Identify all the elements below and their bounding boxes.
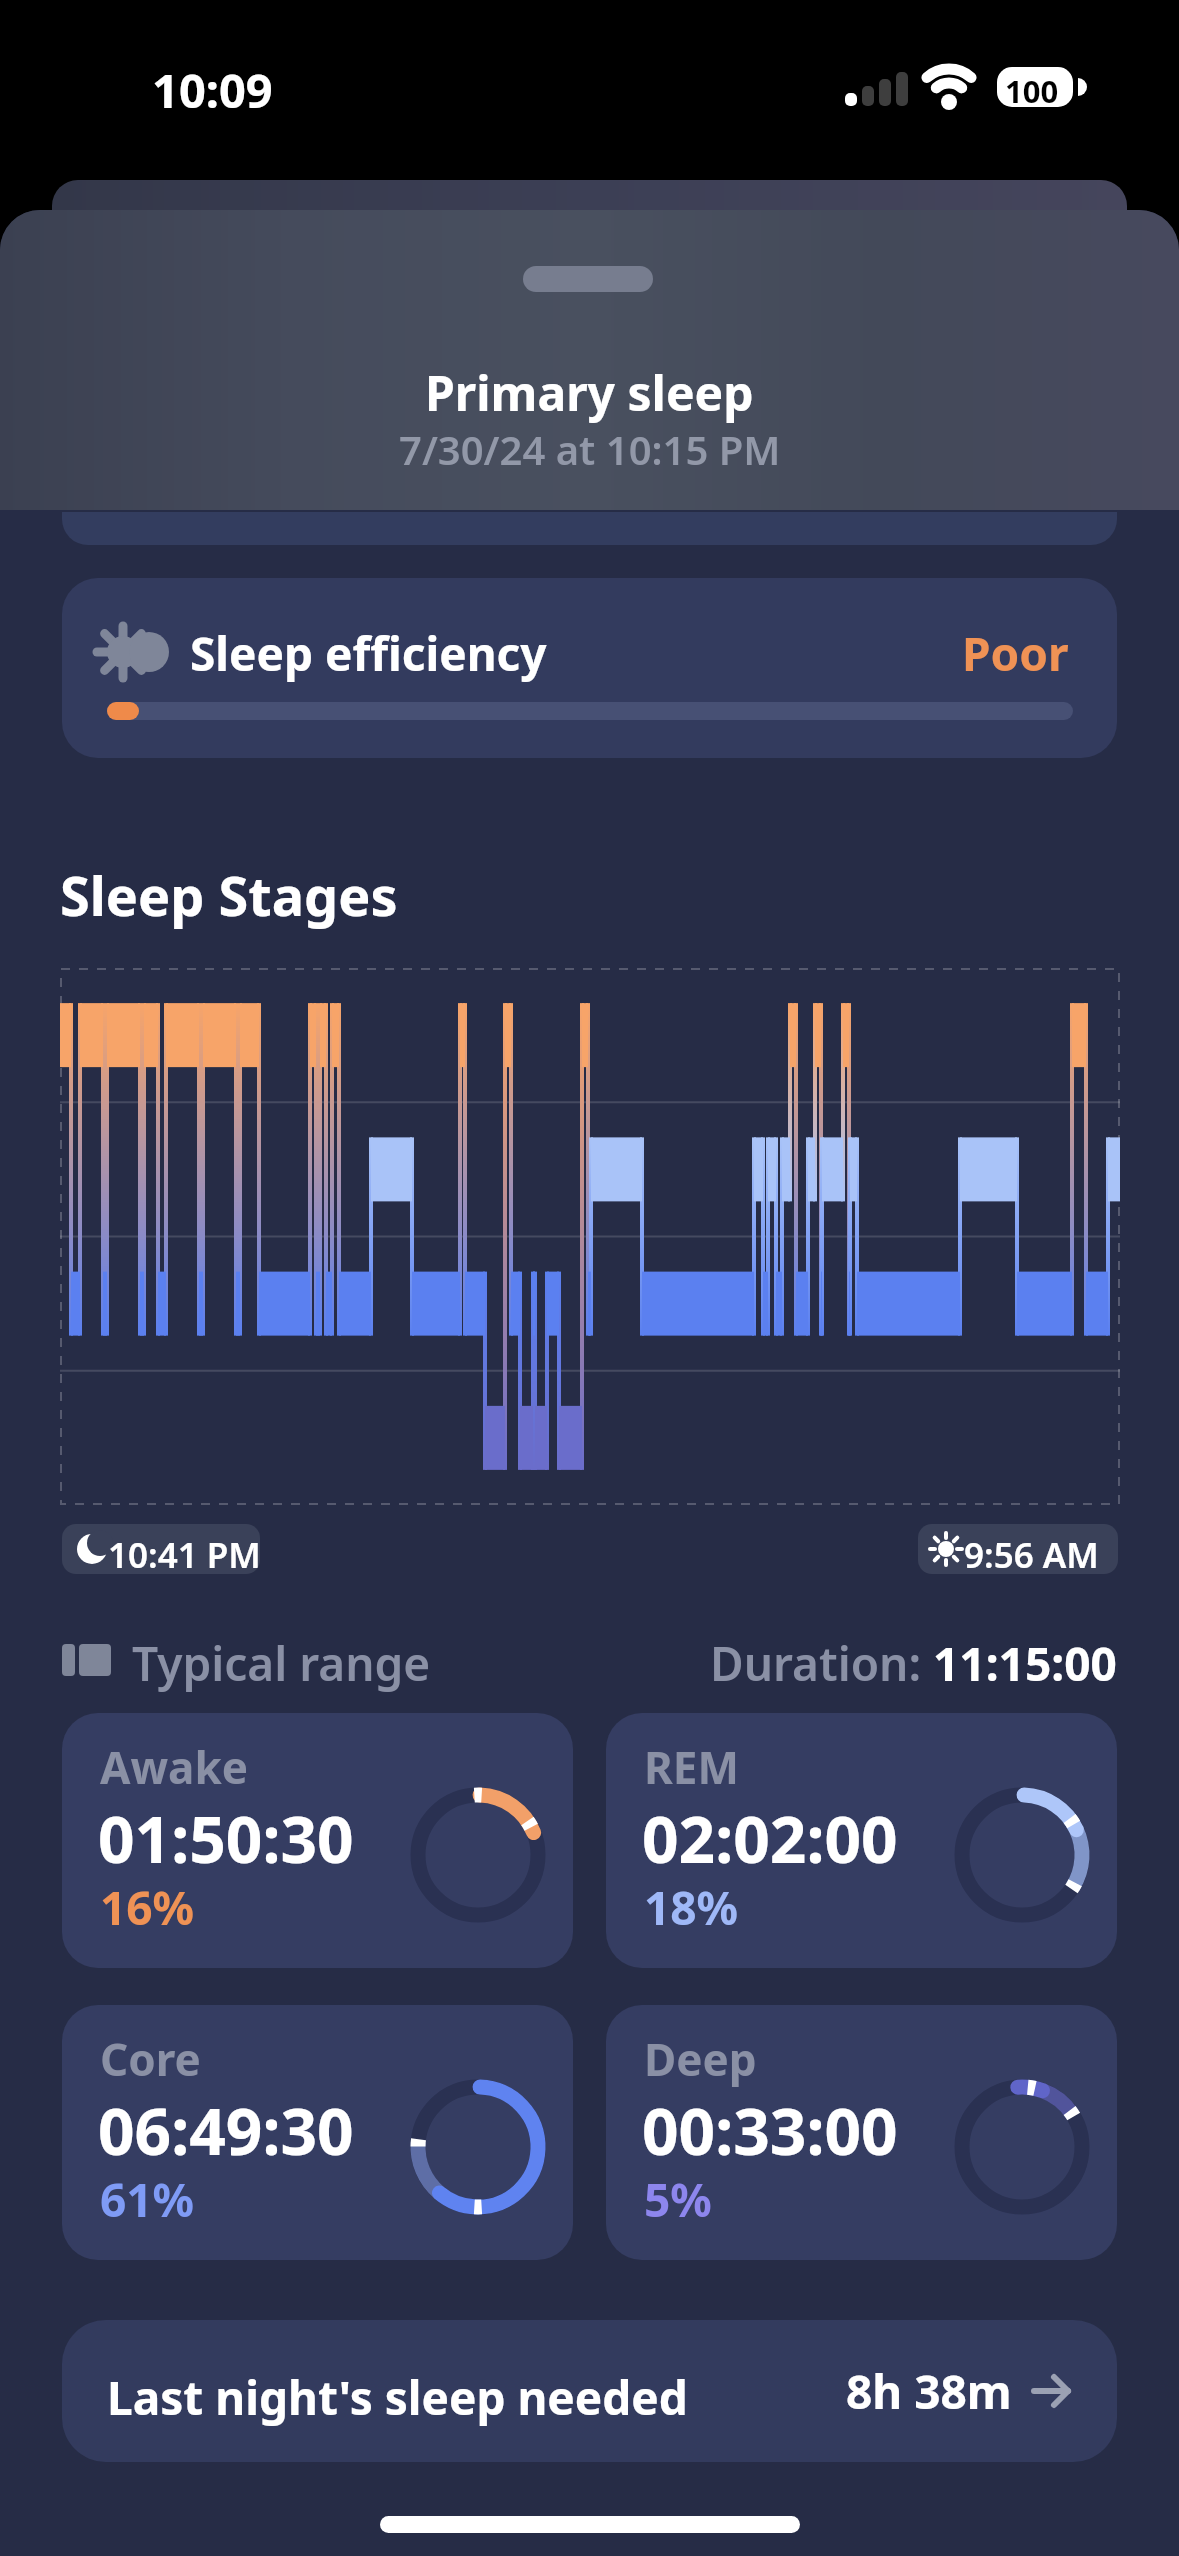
staticText: Typical range (132, 1632, 431, 1695)
staticText: 100 (1005, 70, 1059, 112)
button[interactable]: Core (62, 2005, 573, 2260)
button[interactable]: Awake (62, 1713, 573, 1968)
staticText: Primary sleep (425, 360, 754, 425)
staticText: 7/30/24 at 10:15 PM (399, 422, 781, 476)
button[interactable]: REM (606, 1713, 1117, 1968)
staticText: 5% (644, 2168, 712, 2231)
staticText: Sleep efficiency (190, 622, 547, 685)
staticText: Deep (644, 2029, 757, 2089)
staticText: 00:33:00 (642, 2087, 898, 2174)
button[interactable]: Deep (606, 2005, 1117, 2260)
staticText: 61% (100, 2168, 195, 2231)
staticText: Core (100, 2029, 201, 2089)
staticText: 01:50:30 (98, 1795, 354, 1882)
button[interactable]: 10:41 PM (62, 1524, 260, 1574)
staticText: Poor (962, 622, 1069, 685)
staticText: Sleep Stages (60, 858, 398, 932)
staticText: 06:49:30 (98, 2087, 354, 2174)
staticText: 8h 38m (846, 2360, 1012, 2423)
button[interactable]: 9:56 AM (918, 1524, 1118, 1574)
staticText: Awake (100, 1737, 249, 1797)
staticText: 10:41 PM (108, 1531, 260, 1574)
staticText: Duration: 11:15:00 (710, 1632, 1117, 1695)
button[interactable]: Sleep efficiency (62, 578, 1117, 758)
button[interactable]: Last night's sleep needed (62, 2320, 1117, 2462)
staticText: 16% (100, 1876, 195, 1939)
staticText: Last night's sleep needed (107, 2366, 688, 2429)
staticText: 9:56 AM (964, 1531, 1099, 1574)
staticText: 02:02:00 (642, 1795, 898, 1882)
staticText: 18% (644, 1876, 739, 1939)
staticText: REM (644, 1737, 739, 1797)
staticText: 10:09 (152, 58, 273, 122)
